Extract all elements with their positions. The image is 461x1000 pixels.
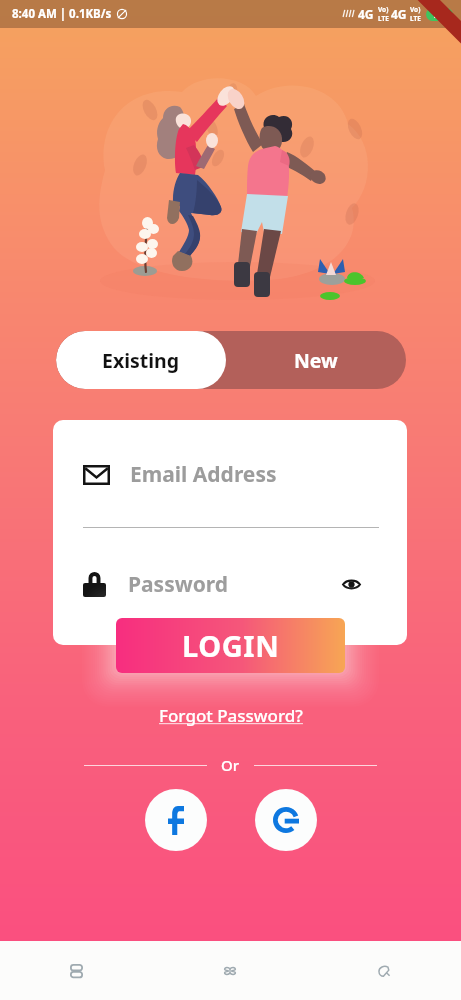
staticText: LTE [410,14,421,23]
button[interactable]: Forgot Password? [153,702,309,729]
button[interactable]: Home [153,941,307,1000]
staticText: Email Address [130,460,277,489]
button[interactable]: Show password [334,567,368,601]
staticText: 8:40 AM | 0.1KB/s [12,6,112,22]
staticText: LOGIN [182,626,280,665]
staticText: LTE [378,14,389,23]
staticText: New [294,347,338,374]
button[interactable]: Existing [56,331,226,389]
staticText: Password [128,570,229,599]
staticText: 100 [432,9,447,21]
button[interactable]: LOGIN [116,618,345,673]
button[interactable]: New [226,331,406,389]
button[interactable]: Back [307,941,461,1000]
staticText: Vo) [378,5,389,14]
staticText: Existing [102,347,180,374]
staticText: Forgot Password? [159,704,303,727]
button[interactable]: Recent apps [0,941,153,1000]
staticText: 4G [358,6,374,22]
staticText: 4G [391,6,407,22]
button[interactable]: Sign in with Google [255,789,317,851]
button[interactable]: Sign in with Facebook [145,789,207,851]
staticText: Vo) [410,5,421,14]
staticText: Or [221,755,240,775]
